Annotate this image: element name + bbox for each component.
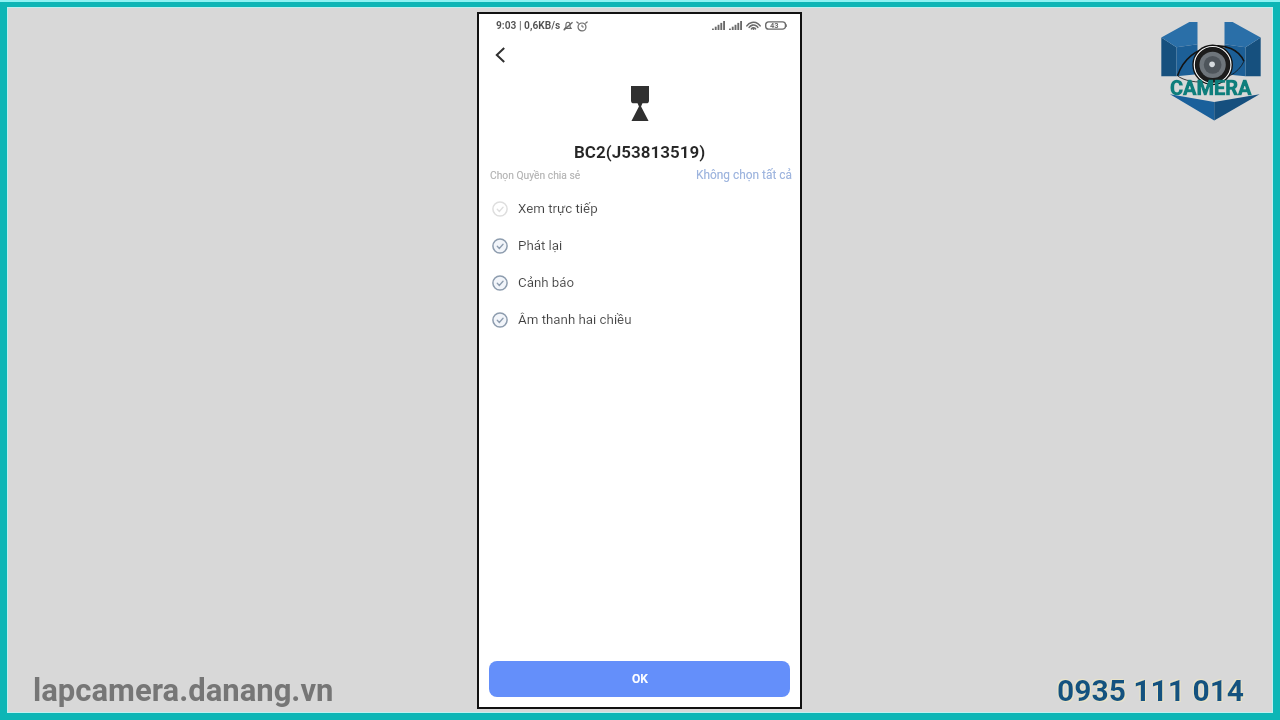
staticText: Chọn Quyền chia sẻ (490, 169, 581, 181)
staticText: lapcamera.danang.vn (33, 672, 334, 708)
button[interactable]: Back (480, 35, 520, 75)
button[interactable]: Âm thanh hai chiều (479, 301, 800, 338)
staticText: Âm thanh hai chiều (518, 312, 632, 328)
staticText: OK (632, 672, 648, 686)
button[interactable]: Phát lại (479, 227, 800, 264)
button[interactable]: OK (489, 661, 790, 697)
button[interactable]: Không chọn tất cả (696, 162, 792, 188)
staticText: 0935 111 014 (1058, 674, 1246, 709)
staticText: Cảnh báo (518, 275, 575, 291)
staticText: BC2(J53813519) (574, 142, 706, 162)
staticText: Không chọn tất cả (696, 168, 792, 182)
staticText: Xem trực tiếp (518, 201, 598, 217)
staticText: 0935 111 014 (1056, 672, 1244, 707)
staticText: 43 (770, 21, 779, 30)
staticText: 9:03 | 0,6KB/s (496, 20, 561, 32)
button[interactable]: Xem trực tiếp (479, 190, 800, 227)
staticText: CAMERA (1170, 76, 1252, 99)
staticText: Phát lại (518, 238, 563, 254)
button[interactable]: Cảnh báo (479, 264, 800, 301)
staticText: 0935 111 014 (1057, 673, 1245, 708)
